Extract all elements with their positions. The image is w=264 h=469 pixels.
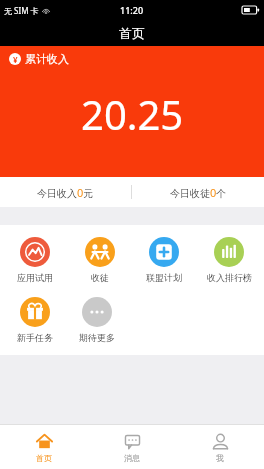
button[interactable]: 今日收徒0个 — [132, 177, 264, 207]
button[interactable]: 今日收入0元 — [0, 177, 131, 207]
button[interactable]: 我 — [176, 425, 264, 469]
button[interactable]: 联盟计划 — [133, 235, 195, 285]
staticText: 今日收入0元 — [37, 185, 94, 200]
staticText: 我 — [216, 453, 224, 463]
staticText: 收入排行榜 — [207, 272, 252, 283]
staticText: 无 SIM 卡 — [4, 5, 39, 16]
other: 联盟计划 — [149, 237, 179, 267]
button[interactable]: 新手任务 — [4, 295, 66, 345]
other: 应用试用 — [20, 237, 50, 267]
staticText: 累计收入 — [25, 52, 69, 66]
staticText: 期待更多 — [79, 332, 115, 343]
button[interactable]: 收徒 — [69, 235, 131, 285]
other: 期待更多 — [82, 297, 112, 327]
staticText: 联盟计划 — [146, 272, 182, 283]
other: 新手任务 — [20, 297, 50, 327]
staticText: ¥ — [13, 54, 18, 65]
button[interactable]: 应用试用 — [4, 235, 66, 285]
button[interactable]: 消息 — [88, 425, 176, 469]
staticText: 首页 — [36, 453, 52, 463]
staticText: 应用试用 — [17, 272, 53, 283]
staticText: 消息 — [124, 453, 140, 463]
staticText: 11:20 — [120, 4, 144, 16]
other: 收入排行榜 — [214, 237, 244, 267]
button[interactable]: 首页 — [0, 425, 88, 469]
staticText: 今日收徒0个 — [170, 185, 227, 200]
staticText: 首页 — [119, 25, 145, 41]
button[interactable]: 收入排行榜 — [198, 235, 260, 285]
button[interactable]: 期待更多 — [66, 295, 128, 345]
staticText: 收徒 — [91, 272, 109, 283]
staticText: 新手任务 — [17, 332, 53, 343]
other: 收徒 — [85, 237, 115, 267]
staticText: 20.25 — [81, 87, 184, 141]
